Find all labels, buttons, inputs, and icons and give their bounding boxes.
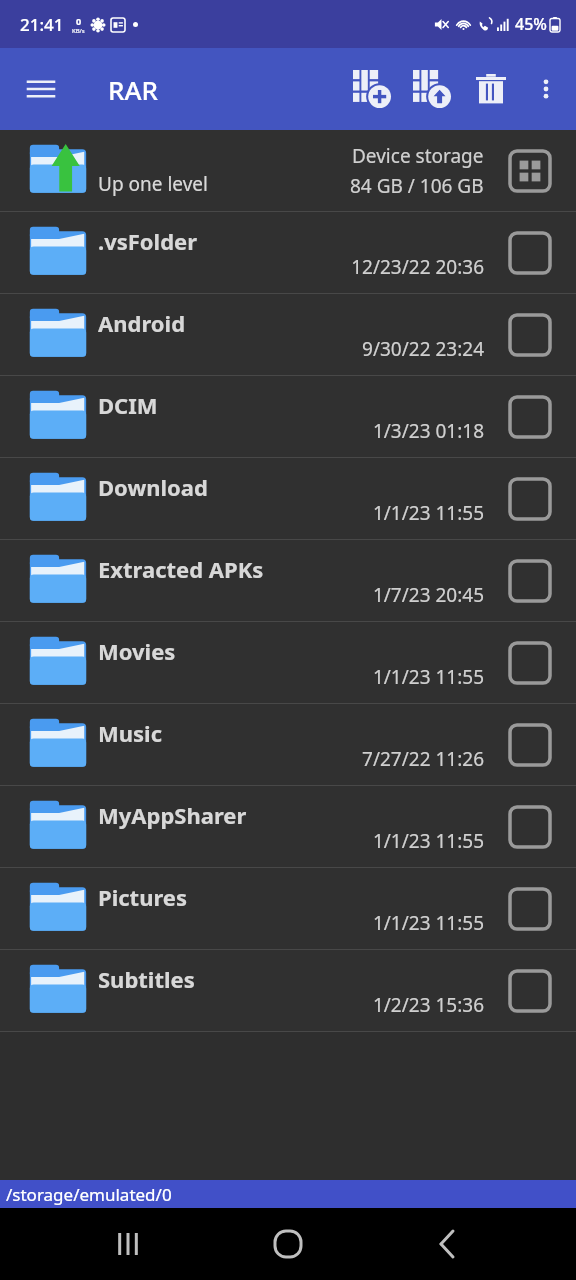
button[interactable]: Up one level [0,130,576,212]
button[interactable]: Android [0,294,576,376]
staticText: Device storage [352,143,484,169]
staticText: .vsFolder [98,226,198,256]
staticText: Extracted APKs [98,554,264,584]
button[interactable]: Back [416,1212,480,1276]
button[interactable]: More options [520,63,572,115]
button[interactable]: Switch view mode [502,143,558,199]
button[interactable]: Home [256,1212,320,1276]
staticText: Download [98,472,208,502]
button[interactable]: MyAppSharer [0,786,576,868]
staticText: Android [98,308,186,338]
staticText: MyAppSharer [98,800,247,830]
staticText: 1/1/23 11:55 [372,910,484,936]
staticText: 45% [515,13,547,35]
staticText: 1/3/23 01:18 [372,418,484,444]
button[interactable]: Add to archive [342,59,402,119]
staticText: Up one level [98,171,208,197]
button[interactable]: Download [0,458,576,540]
button[interactable]: Music [0,704,576,786]
button[interactable]: Select .vsFolder [502,225,558,281]
button[interactable]: Select DCIM [502,389,558,445]
staticText: Subtitles [98,964,195,994]
staticText: 1/2/23 15:36 [372,992,484,1018]
staticText: 7/27/22 11:26 [362,746,484,772]
staticText: 12/23/22 20:36 [351,254,484,280]
button[interactable]: Extracted APKs [0,540,576,622]
staticText: 9/30/22 23:24 [362,336,484,362]
staticText: Pictures [98,882,188,912]
staticText: KB/s [72,27,85,35]
button[interactable]: Subtitles [0,950,576,1032]
staticText: /storage/emulated/0 [6,1183,172,1206]
button[interactable]: Select Android [502,307,558,363]
button[interactable]: Select Music [502,717,558,773]
button[interactable]: DCIM [0,376,576,458]
staticText: RAR [108,72,158,107]
button[interactable]: Select MyAppSharer [502,799,558,855]
staticText: 1/1/23 11:55 [372,664,484,690]
button[interactable]: Select Pictures [502,881,558,937]
staticText: 1/7/23 20:45 [372,582,484,608]
button[interactable]: Movies [0,622,576,704]
button[interactable]: Open navigation menu [12,60,70,118]
staticText: 1/1/23 11:55 [372,828,484,854]
staticText: 84 GB / 106 GB [350,173,484,199]
button[interactable]: /storage/emulated/0 [0,1180,576,1208]
button[interactable]: Delete [462,60,520,118]
staticText: 21:41 [20,13,64,36]
staticText: 0 [76,15,82,27]
staticText: Music [98,718,163,748]
staticText: Movies [98,636,176,666]
button[interactable]: Select Extracted APKs [502,553,558,609]
staticText: 1/1/23 11:55 [372,500,484,526]
button[interactable]: Select Subtitles [502,963,558,1019]
staticText: DCIM [98,390,158,420]
button[interactable]: Select Download [502,471,558,527]
button[interactable]: Select Movies [502,635,558,691]
button[interactable]: Extract archive [402,59,462,119]
button[interactable]: .vsFolder [0,212,576,294]
button[interactable]: Pictures [0,868,576,950]
button[interactable]: Recent apps [96,1212,160,1276]
